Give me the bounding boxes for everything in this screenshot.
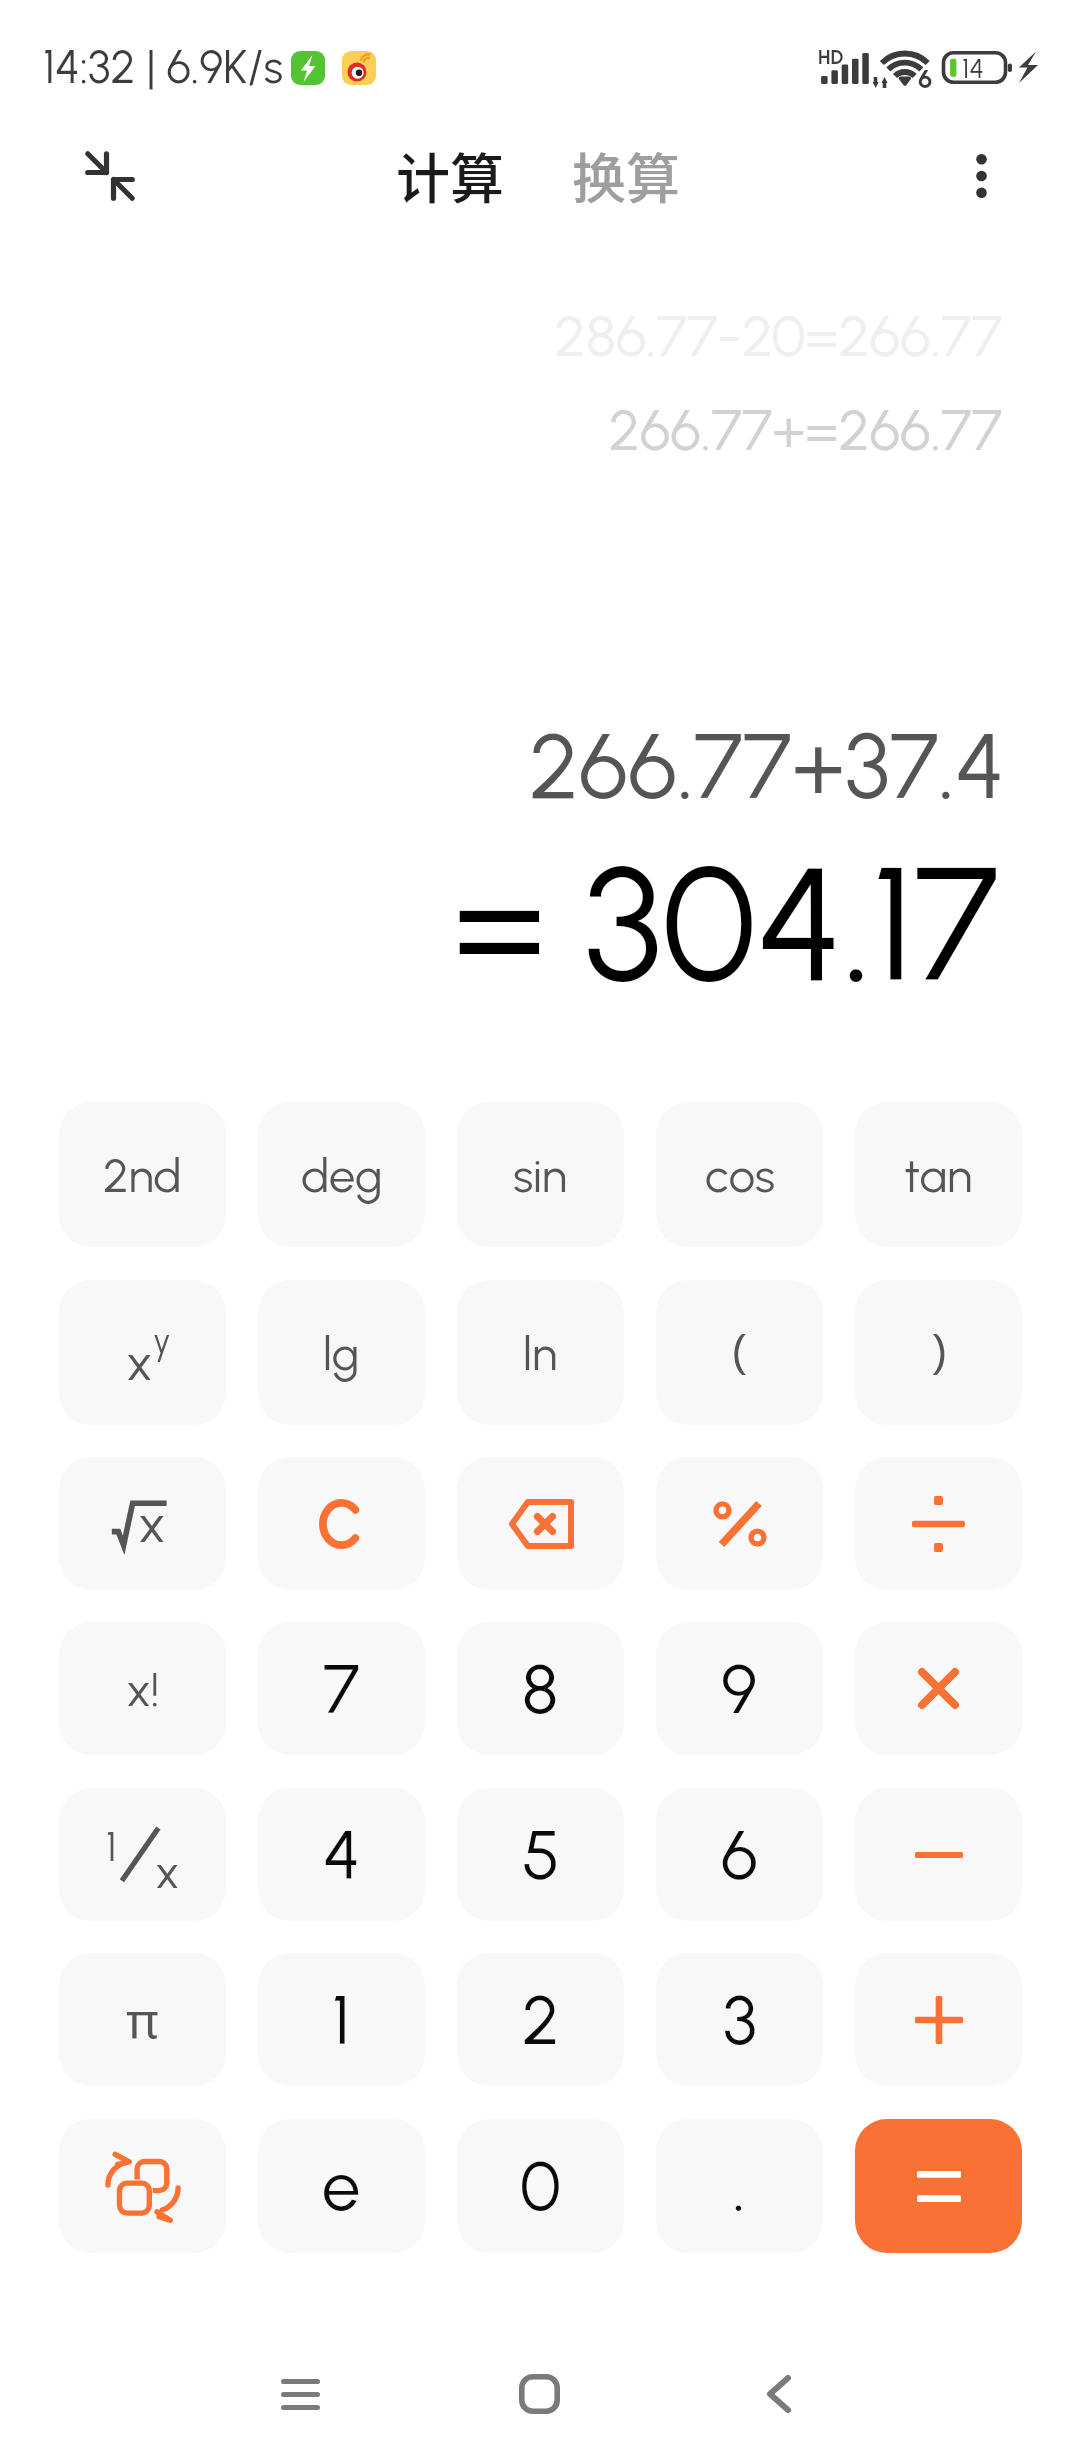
button[interactable]: 3 [656,1953,823,2086]
button[interactable]: tan [855,1102,1022,1247]
staticText: e [322,2145,361,2227]
button[interactable]: Recent apps [252,2346,348,2442]
staticText: sin [513,1147,568,1203]
staticText: x [126,1332,153,1386]
staticText: x! [126,1661,160,1717]
staticText: 8 [522,1648,559,1730]
staticText: 2 [522,1979,560,2061]
button[interactable]: x to the power y [59,1280,226,1425]
button[interactable]: 换算 [572,136,680,214]
staticText: cos [705,1147,775,1203]
button[interactable]: 6 [656,1788,823,1921]
button[interactable]: 7 [258,1622,425,1755]
staticText: deg [301,1147,383,1203]
button[interactable]: Minus [855,1788,1022,1921]
button[interactable]: 计算 [396,136,504,214]
staticText: 6 [721,1814,758,1896]
staticText: 7 [323,1648,360,1730]
staticText: 4 [323,1814,361,1896]
staticText: 1 [106,1823,117,1871]
staticText: lg [323,1325,360,1381]
staticText: 6 [918,63,933,94]
button[interactable]: Home [491,2346,587,2442]
staticText: 5 [522,1814,560,1896]
button[interactable]: Convert units [59,2119,226,2253]
button[interactable]: Square root [59,1457,226,1590]
staticText: y [153,1321,171,1362]
staticText: 2nd [103,1147,182,1203]
staticText: x [138,1493,166,1543]
button[interactable]: deg [258,1102,425,1247]
button[interactable]: 4 [258,1788,425,1921]
staticText: 3 [723,1979,757,2061]
staticText: 1 [332,1979,351,2061]
button[interactable]: 9 [656,1622,823,1755]
button[interactable]: ( [656,1280,823,1425]
staticText: 286.77-20=266.77 [0,302,1002,370]
button[interactable]: sin [457,1102,624,1247]
staticText: ( [731,1320,749,1386]
staticText: x [155,1844,180,1898]
button[interactable]: More options [933,128,1029,224]
button[interactable]: ln [457,1280,624,1425]
staticText: ln [523,1325,558,1381]
staticText: 计算 [396,136,504,214]
button[interactable]: Clear [258,1457,425,1590]
button[interactable]: Plus [855,1953,1022,2086]
button[interactable]: 8 [457,1622,624,1755]
staticText: tan [904,1147,973,1203]
staticText: 0 [520,2145,561,2227]
button[interactable]: 2 [457,1953,624,2086]
button[interactable]: Delete [457,1457,624,1590]
staticText: 14 [962,52,984,84]
button[interactable]: Divide [855,1457,1022,1590]
button[interactable]: One over x [59,1788,226,1921]
staticText: ) [930,1320,948,1386]
staticText: 14:32 | 6.9K/s [43,40,284,95]
button[interactable]: π [59,1953,226,2086]
button[interactable]: x! [59,1622,226,1755]
staticText: 266.77+37.4 [0,711,1005,821]
button[interactable]: cos [656,1102,823,1247]
button[interactable]: Equals [855,2119,1022,2253]
staticText: = 304.17 [0,829,999,1020]
button[interactable]: 5 [457,1788,624,1921]
staticText: . [733,2145,746,2227]
button[interactable]: Multiply [855,1622,1022,1755]
button[interactable]: e [258,2119,425,2253]
button[interactable]: lg [258,1280,425,1425]
staticText: HD [818,46,844,69]
button[interactable]: Back [731,2346,827,2442]
staticText: π [126,1986,159,2054]
button[interactable]: Percent [656,1457,823,1590]
button[interactable]: Collapse [62,128,158,224]
button[interactable]: 0 [457,2119,624,2253]
staticText: 266.77+=266.77 [0,396,1002,464]
button[interactable]: . [656,2119,823,2253]
button[interactable]: 2nd [59,1102,226,1247]
button[interactable]: 1 [258,1953,425,2086]
staticText: 9 [721,1648,758,1730]
button[interactable]: ) [855,1280,1022,1425]
staticText: 换算 [572,136,680,214]
